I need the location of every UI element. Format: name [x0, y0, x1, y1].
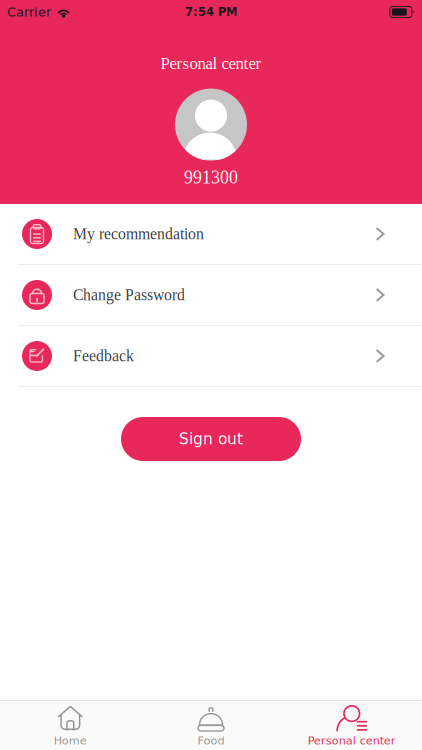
button[interactable]: Sign out	[121, 417, 301, 461]
button[interactable]: Feedback	[0, 326, 422, 387]
staticText: Personal center	[160, 54, 261, 73]
staticText: 7:54 PM	[185, 5, 237, 19]
button[interactable]: Change Password	[0, 265, 422, 326]
staticText: My recommendation	[73, 225, 204, 243]
staticText: Food	[197, 734, 224, 747]
staticText: Carrier	[7, 4, 51, 20]
staticText: Feedback	[73, 347, 134, 365]
staticText: Home	[54, 734, 87, 747]
staticText: 991300	[184, 168, 238, 187]
staticText: Change Password	[73, 286, 185, 304]
staticText: Sign out	[179, 430, 243, 448]
button[interactable]: My recommendation	[0, 204, 422, 265]
button[interactable]: Home	[0, 701, 141, 750]
button[interactable]: Personal center	[281, 701, 422, 750]
button[interactable]: Food	[141, 701, 281, 750]
staticText: Personal center	[308, 734, 396, 747]
